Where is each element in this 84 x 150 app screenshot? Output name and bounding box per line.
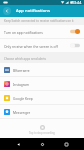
button[interactable]: Back (3, 7, 11, 15)
staticText: 13:44 (72, 0, 82, 5)
staticText: Keep Switch connected to receive notific… (4, 19, 74, 23)
staticText: Instagram (13, 82, 30, 86)
button[interactable]: Instagram (0, 77, 84, 90)
staticText: Turn on app notifications (4, 30, 69, 34)
staticText: Only receive when the screen is off (4, 44, 69, 48)
button[interactable]: Messenger (0, 105, 84, 118)
staticText: Tap to stop recording (29, 131, 55, 135)
button[interactable]: Google Keep (0, 91, 84, 104)
button[interactable]: Turn on app notifications (0, 25, 84, 38)
button[interactable]: Home (36, 138, 48, 150)
staticText: App notifications (16, 8, 50, 14)
button[interactable]: Back (12, 138, 24, 150)
staticText: Choose which apps send alerts (4, 57, 46, 61)
staticText: Messenger (13, 110, 31, 114)
button[interactable]: ВКонтакте (0, 63, 84, 76)
button[interactable]: Recents (60, 138, 72, 150)
button[interactable]: Only receive when the screen is off (0, 39, 84, 52)
staticText: Google Keep (13, 96, 33, 100)
staticText: ВКонтакте (13, 68, 30, 72)
